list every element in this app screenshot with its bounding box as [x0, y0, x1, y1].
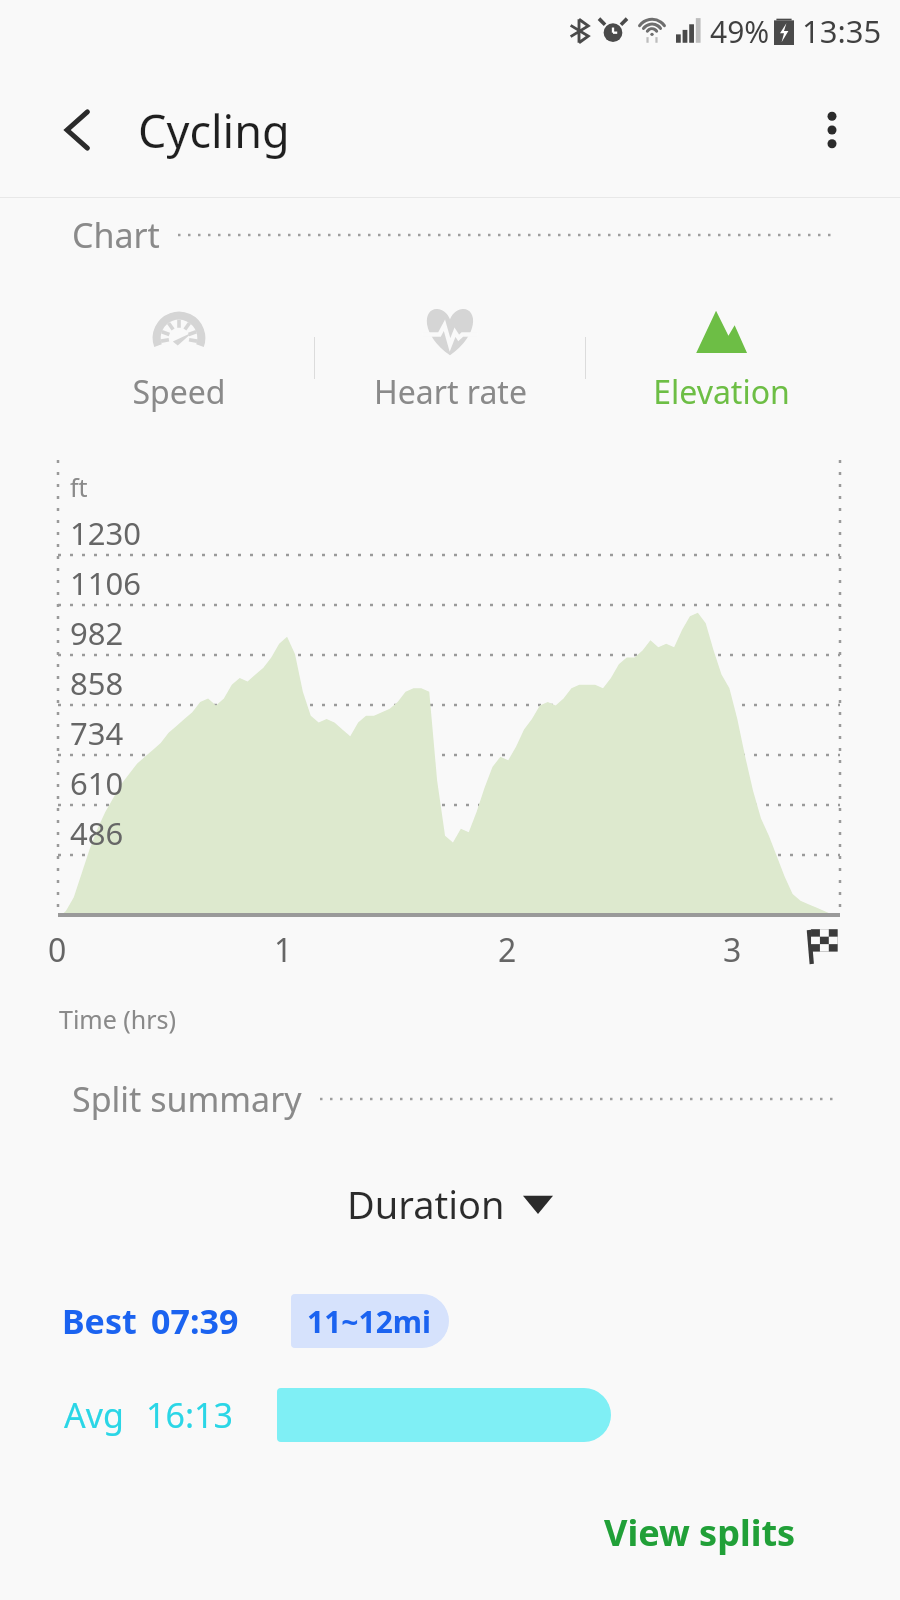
staticText: ft	[70, 470, 88, 504]
button[interactable]: More options	[802, 100, 862, 160]
staticText: Duration	[347, 1178, 505, 1230]
staticText: 0	[48, 928, 67, 972]
staticText: 2	[498, 928, 517, 972]
staticText: Elevation	[653, 370, 790, 414]
staticText: Heart rate	[374, 370, 527, 414]
staticText: 982	[70, 612, 124, 654]
staticText: View splits	[604, 1508, 796, 1557]
staticText: 1	[274, 928, 293, 972]
staticText: 11~12mi	[307, 1301, 432, 1342]
staticText: Speed	[132, 370, 226, 414]
button[interactable]: Best	[0, 1290, 900, 1352]
button[interactable]: Elevation	[586, 296, 856, 420]
staticText: 07:39	[151, 1298, 239, 1344]
staticText: 734	[70, 712, 124, 754]
staticText: 486	[70, 812, 124, 854]
staticText: Split summary	[72, 1076, 302, 1122]
staticText: 13:35	[802, 10, 882, 52]
staticText: 1106	[70, 562, 141, 604]
staticText: Time (hrs)	[59, 1002, 177, 1036]
staticText: 1230	[70, 512, 141, 554]
staticText: Avg	[64, 1392, 124, 1438]
staticText: 610	[70, 762, 124, 804]
other: Finish	[806, 926, 842, 966]
button[interactable]: View splits	[584, 1498, 900, 1567]
button[interactable]: Speed	[44, 296, 314, 420]
staticText: 49%	[710, 11, 770, 52]
button[interactable]: Heart rate	[315, 296, 585, 420]
button[interactable]: Duration	[329, 1170, 571, 1238]
staticText: 858	[70, 662, 124, 704]
button[interactable]: Back	[44, 95, 114, 165]
staticText: 3	[723, 928, 742, 972]
staticText: Best	[62, 1298, 137, 1344]
button[interactable]: Avg	[0, 1384, 900, 1446]
staticText: Cycling	[138, 100, 290, 161]
staticText: 16:13	[146, 1392, 233, 1438]
staticText: Chart	[72, 212, 160, 258]
